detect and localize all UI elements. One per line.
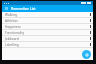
button[interactable]: More options [87, 24, 93, 29]
button[interactable]: More options [87, 42, 93, 47]
button[interactable]: More options [87, 36, 93, 41]
button[interactable]: Functionality [2, 30, 93, 36]
button[interactable]: More options [87, 12, 93, 17]
staticText: Labelling [5, 43, 87, 47]
button[interactable]: Athletics [2, 18, 93, 24]
staticText: Happiness [5, 25, 87, 29]
staticText: Functionality [5, 31, 87, 35]
button[interactable]: Walking [2, 12, 93, 18]
button[interactable]: Open navigation menu [4, 6, 9, 11]
staticText: Walking [5, 13, 87, 17]
staticText: Athletics [5, 19, 87, 23]
staticText: Jobboard [5, 37, 87, 41]
button[interactable]: More options [87, 30, 93, 35]
button[interactable]: Happiness [2, 24, 93, 30]
button[interactable]: More options [87, 18, 93, 23]
button[interactable]: Labelling [2, 42, 93, 48]
button[interactable]: Add item [82, 50, 91, 59]
staticText: Remember List [11, 6, 36, 11]
button[interactable]: Jobboard [2, 36, 93, 42]
